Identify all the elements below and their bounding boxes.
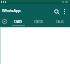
staticText: WhatsApp — [2, 8, 21, 13]
staticText: CALLS — [56, 20, 64, 24]
staticText: STATUS — [34, 20, 44, 24]
button[interactable]: CALLS — [49, 17, 70, 27]
button[interactable]: Search — [52, 5, 61, 18]
button[interactable]: Camera — [0, 17, 8, 27]
button[interactable]: STATUS — [28, 17, 49, 27]
staticText: CHATS — [14, 20, 22, 24]
button[interactable]: CHATS — [8, 17, 28, 27]
button[interactable]: More options — [61, 5, 68, 18]
